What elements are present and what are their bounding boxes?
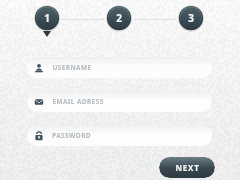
staticText: 1 [44, 11, 50, 25]
other: User icon [34, 63, 44, 73]
button[interactable]: Step 3 [178, 5, 204, 31]
other: Lock icon [34, 131, 44, 141]
button[interactable]: Step 2 [106, 5, 132, 31]
button[interactable]: PASSWORD [27, 125, 212, 146]
staticText: 3 [188, 11, 194, 25]
button[interactable]: NEXT [159, 157, 215, 178]
button[interactable]: Step 1 [34, 5, 60, 31]
button[interactable]: EMAIL ADRESS [27, 91, 212, 112]
other: Mail icon [34, 97, 44, 107]
staticText: NEXT [175, 162, 200, 173]
staticText: EMAIL ADRESS [52, 97, 104, 106]
staticText: USERNAME [52, 63, 92, 72]
button[interactable]: USERNAME [27, 57, 212, 78]
staticText: PASSWORD [52, 131, 91, 140]
staticText: 2 [116, 11, 122, 25]
